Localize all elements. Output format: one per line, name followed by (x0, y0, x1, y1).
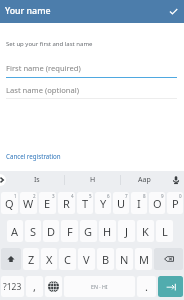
button[interactable]: B (97, 248, 114, 270)
staticText: Set up your first and last name (6, 40, 93, 48)
button[interactable]: R (58, 192, 75, 214)
staticText: Aap (138, 175, 151, 185)
button[interactable]: ?123 (1, 276, 24, 297)
staticText: 2 (33, 193, 36, 199)
button[interactable]: , (26, 276, 43, 297)
staticText: R (63, 196, 70, 211)
staticText: 8 (143, 193, 146, 199)
button[interactable]: More suggestions (0, 174, 6, 186)
button[interactable]: Z (23, 248, 39, 270)
button[interactable]: I (131, 192, 147, 214)
button[interactable]: L (156, 220, 173, 242)
button[interactable]: V (78, 248, 95, 270)
staticText: 5 (89, 193, 92, 199)
staticText: 6 (107, 193, 110, 199)
button[interactable]: EN · HI (64, 276, 135, 297)
staticText: ?123 (3, 281, 22, 293)
button[interactable]: H (99, 220, 116, 242)
staticText: F (67, 224, 73, 239)
button[interactable]: G (80, 220, 97, 242)
staticText: S (30, 224, 37, 239)
button[interactable]: C (59, 248, 76, 270)
button[interactable]: . (137, 276, 156, 297)
button[interactable]: Change language (45, 276, 62, 297)
staticText: Last name (optional) (6, 85, 79, 95)
staticText: U (117, 196, 126, 211)
staticText: 7 (125, 193, 128, 199)
staticText: J (125, 224, 129, 239)
staticText: EN · HI (91, 283, 108, 290)
button[interactable]: Last name (optional) (0, 85, 184, 102)
staticText: T (82, 196, 89, 211)
button[interactable]: E (39, 192, 56, 214)
staticText: O (153, 196, 162, 211)
staticText: W (23, 196, 34, 211)
staticText: , (33, 279, 36, 294)
staticText: 4 (71, 193, 74, 199)
button[interactable]: P (167, 192, 183, 214)
staticText: V (83, 252, 90, 267)
staticText: . (145, 279, 148, 294)
button[interactable]: First name (required) (0, 63, 184, 80)
button[interactable]: Cancel registration (5, 151, 62, 161)
staticText: K (142, 224, 149, 239)
button[interactable]: Voice input (167, 171, 184, 189)
button[interactable]: D (43, 220, 59, 242)
button[interactable]: A (7, 220, 23, 242)
button[interactable]: N (116, 248, 133, 270)
staticText: B (102, 252, 110, 267)
staticText: H (90, 175, 96, 185)
staticText: N (120, 252, 129, 267)
staticText: Is (34, 175, 40, 185)
staticText: Your name (5, 5, 51, 17)
button[interactable]: M (135, 248, 152, 270)
button[interactable]: F (61, 220, 78, 242)
button[interactable]: X (41, 248, 57, 270)
button[interactable]: Q (1, 192, 18, 214)
button[interactable]: Aap (121, 171, 167, 189)
staticText: X (46, 252, 53, 267)
staticText: Y (100, 196, 107, 211)
staticText: Q (5, 196, 14, 211)
button[interactable]: Shift (1, 248, 21, 270)
button[interactable]: K (137, 220, 154, 242)
staticText: Cancel registration (6, 152, 61, 160)
button[interactable]: Backspace (154, 248, 183, 270)
staticText: 9 (161, 193, 164, 199)
button[interactable]: S (25, 220, 41, 242)
staticText: 1 (14, 193, 17, 199)
staticText: H (103, 224, 112, 239)
staticText: C (64, 252, 71, 267)
button[interactable]: W (20, 192, 37, 214)
staticText: First name (required) (6, 63, 81, 73)
staticText: I (137, 196, 141, 211)
staticText: L (162, 224, 168, 239)
staticText: A (11, 224, 19, 239)
staticText: Z (28, 252, 35, 267)
staticText: P (172, 196, 179, 211)
button[interactable]: Enter (158, 276, 183, 297)
staticText: 3 (52, 193, 55, 199)
staticText: 0 (179, 193, 182, 199)
button[interactable]: H (65, 171, 120, 189)
staticText: M (139, 252, 149, 267)
button[interactable]: Is (9, 171, 64, 189)
staticText: E (44, 196, 51, 211)
button[interactable]: J (118, 220, 135, 242)
button[interactable]: U (113, 192, 129, 214)
button[interactable]: Done (162, 0, 184, 23)
staticText: G (84, 224, 93, 239)
button[interactable]: Y (95, 192, 111, 214)
button[interactable]: O (149, 192, 165, 214)
button[interactable]: T (77, 192, 93, 214)
staticText: D (47, 224, 56, 239)
